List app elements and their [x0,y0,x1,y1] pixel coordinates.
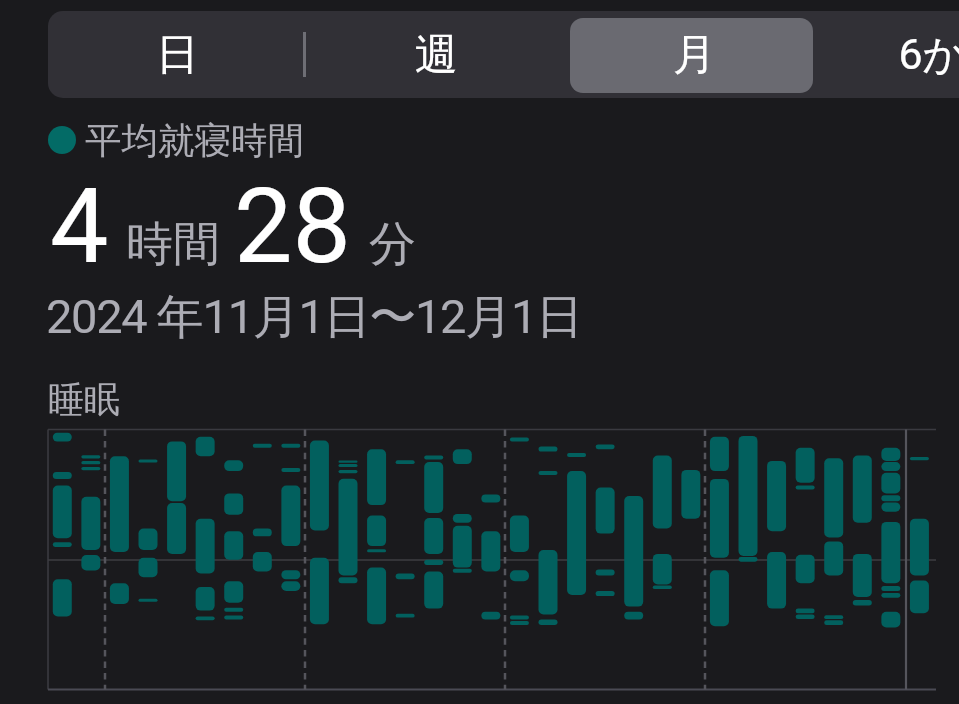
staticText: 4 [50,166,109,288]
button[interactable]: 日 [48,11,307,98]
button[interactable]: 月 [565,11,824,98]
staticText: 日 [156,28,199,82]
button[interactable] [570,18,813,93]
staticText: 睡眠 [48,377,120,422]
staticText: 月 [673,28,716,82]
staticText: 6か月 [898,28,959,82]
staticText: 平均就寝時間 [85,118,304,164]
staticText: 週 [415,28,458,82]
button[interactable]: 6か月 [824,11,959,98]
staticText: 28 [234,166,351,288]
staticText: 分 [369,215,416,274]
staticText: 時間 [126,215,220,274]
staticText: 2024 年11月1日〜12月1日 [46,288,582,347]
button[interactable]: 週 [307,11,566,98]
